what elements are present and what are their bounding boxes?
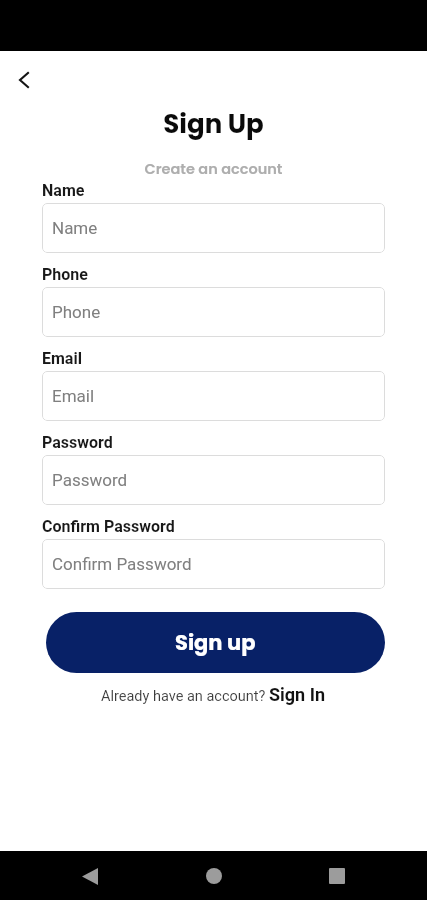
staticText: Sign up	[175, 628, 256, 657]
staticText: Create an account	[0, 159, 427, 179]
button[interactable]: Back	[66, 852, 114, 900]
staticText: Already have an account?	[101, 688, 269, 705]
button[interactable]: Back	[8, 64, 40, 96]
staticText: Password	[42, 433, 113, 452]
staticText: Email	[42, 349, 82, 368]
button[interactable]: Sign In	[269, 684, 326, 705]
staticText: Confirm Password	[52, 554, 192, 574]
staticText: Confirm Password	[42, 517, 175, 536]
button[interactable]: Recent apps	[313, 852, 361, 900]
button[interactable]: Email	[42, 371, 385, 421]
staticText: Phone	[52, 302, 101, 322]
button[interactable]: Sign up	[46, 612, 385, 673]
staticText: Name	[42, 181, 85, 200]
button[interactable]: Home	[190, 852, 238, 900]
button[interactable]: Password	[42, 455, 385, 505]
button[interactable]: Phone	[42, 287, 385, 337]
staticText: Phone	[42, 265, 88, 284]
staticText: Sign Up	[0, 106, 427, 142]
staticText: Name	[52, 218, 98, 238]
button[interactable]: Confirm Password	[42, 539, 385, 589]
staticText: Password	[52, 470, 128, 490]
staticText: Sign In	[269, 684, 326, 705]
staticText: Email	[52, 386, 95, 406]
button[interactable]: Name	[42, 203, 385, 253]
